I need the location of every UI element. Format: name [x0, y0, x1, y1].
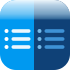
button[interactable]: Activity	[37, 45, 67, 49]
button[interactable]: Inbox	[4, 29, 33, 33]
button[interactable]: Details	[37, 37, 67, 41]
button[interactable]: Today	[4, 37, 33, 41]
button[interactable]: Flagged	[4, 45, 33, 49]
button[interactable]: Summary	[37, 29, 67, 33]
